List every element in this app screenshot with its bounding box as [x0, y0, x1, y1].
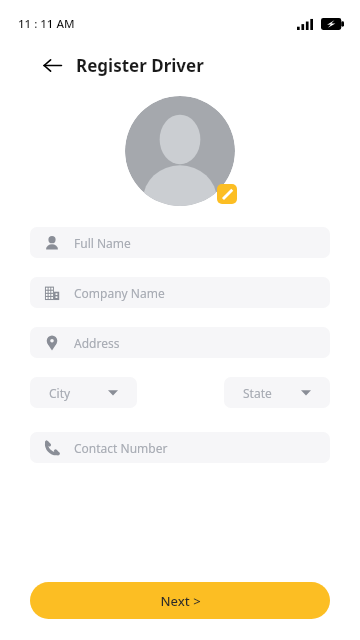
button[interactable]: State	[224, 377, 330, 408]
staticText: State	[243, 385, 272, 401]
button[interactable]: City	[30, 377, 137, 408]
button[interactable]: Edit photo	[217, 184, 237, 204]
staticText: Next >	[160, 592, 201, 610]
button[interactable]: Address	[30, 327, 330, 358]
staticText: 11 : 11 AM	[18, 16, 75, 32]
staticText: Address	[74, 335, 120, 351]
button[interactable]: Back	[38, 51, 66, 79]
staticText: City	[49, 385, 71, 401]
button[interactable]: Company Name	[30, 277, 330, 308]
staticText: Contact Number	[74, 440, 168, 456]
staticText: Register Driver	[76, 54, 204, 77]
staticText: Full Name	[74, 235, 131, 251]
button[interactable]: Contact Number	[30, 432, 330, 463]
button[interactable]: Next >	[30, 582, 330, 619]
button[interactable]: Full Name	[30, 227, 330, 258]
staticText: Company Name	[74, 285, 165, 301]
